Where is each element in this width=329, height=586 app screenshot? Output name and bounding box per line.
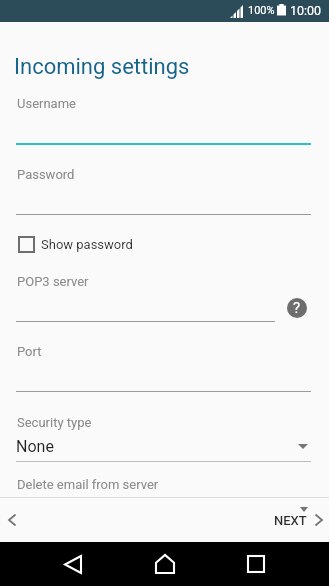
staticText: None xyxy=(16,437,54,456)
button[interactable]: Back xyxy=(49,544,97,584)
staticText: Port xyxy=(17,344,42,359)
button[interactable]: Show password xyxy=(16,233,133,255)
staticText: Delete email from server xyxy=(17,477,159,492)
staticText: Security type xyxy=(17,415,92,430)
staticText: POP3 server xyxy=(17,274,89,289)
button[interactable]: Home xyxy=(141,544,189,584)
button[interactable]: None xyxy=(16,434,311,458)
button[interactable]: Previous xyxy=(0,502,30,538)
button[interactable]: Recents xyxy=(232,544,280,584)
staticText: 100% xyxy=(248,4,275,17)
staticText: Incoming settings xyxy=(14,54,190,80)
staticText: 10:00 xyxy=(290,3,322,18)
staticText: NEXT xyxy=(274,513,307,528)
button[interactable]: Help xyxy=(287,298,307,318)
button[interactable]: NEXT xyxy=(274,502,322,538)
staticText: Show password xyxy=(41,237,133,252)
staticText: Password xyxy=(17,167,75,182)
staticText: Username xyxy=(17,96,76,111)
staticText: ? xyxy=(293,299,301,317)
